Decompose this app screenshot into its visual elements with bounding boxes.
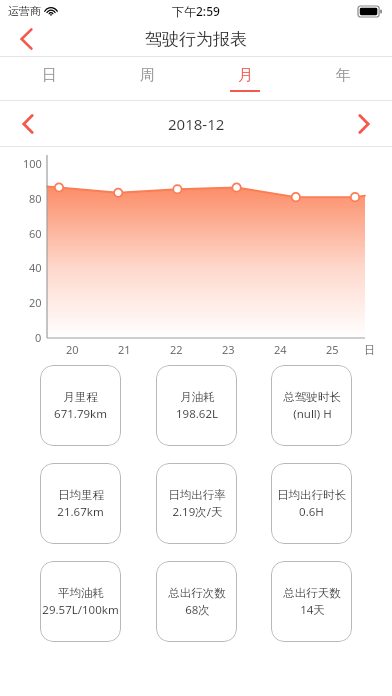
staticText: 20 bbox=[29, 295, 42, 310]
staticText: 68次 bbox=[185, 602, 210, 618]
staticText: 下午2:59 bbox=[172, 3, 220, 19]
staticText: 60 bbox=[29, 226, 42, 241]
staticText: 100 bbox=[23, 156, 42, 171]
button[interactable]: 总出行天数 bbox=[271, 561, 352, 642]
staticText: 14天 bbox=[300, 602, 325, 618]
button[interactable]: 上一月 bbox=[8, 104, 48, 144]
staticText: 月 bbox=[238, 66, 253, 85]
staticText: 671.79km bbox=[54, 406, 107, 422]
button[interactable]: 返回 bbox=[8, 22, 44, 56]
button[interactable]: 月里程 bbox=[40, 365, 121, 446]
staticText: 0.6H bbox=[299, 504, 324, 520]
staticText: 29.57L/100km bbox=[42, 602, 119, 618]
staticText: 25 bbox=[326, 342, 339, 357]
button[interactable]: 日均出行时长 bbox=[271, 463, 352, 544]
staticText: 日 bbox=[42, 66, 57, 85]
staticText: 80 bbox=[29, 191, 42, 206]
staticText: 20 bbox=[66, 342, 79, 357]
button[interactable]: 日均里程 bbox=[40, 463, 121, 544]
staticText: 驾驶行为报表 bbox=[145, 29, 247, 50]
button[interactable]: 日均出行率 bbox=[156, 463, 237, 544]
staticText: 总出行次数 bbox=[168, 586, 226, 600]
staticText: 21.67km bbox=[57, 504, 104, 520]
staticText: (null) H bbox=[293, 406, 332, 422]
staticText: 21 bbox=[118, 342, 131, 357]
staticText: 198.62L bbox=[176, 406, 218, 422]
staticText: 日均出行时长 bbox=[277, 488, 346, 502]
staticText: 日均里程 bbox=[58, 488, 104, 502]
staticText: 总驾驶时长 bbox=[283, 390, 341, 404]
staticText: 运营商 bbox=[8, 4, 41, 18]
button[interactable]: 总驾驶时长 bbox=[271, 365, 352, 446]
staticText: 0 bbox=[35, 330, 42, 345]
staticText: 月里程 bbox=[63, 390, 98, 404]
staticText: 23 bbox=[222, 342, 235, 357]
staticText: 24 bbox=[274, 342, 287, 357]
staticText: 2018-12 bbox=[168, 114, 225, 134]
button[interactable]: 周 bbox=[98, 57, 196, 100]
staticText: 年 bbox=[336, 66, 351, 85]
button[interactable]: 年 bbox=[294, 57, 392, 100]
staticText: 日 bbox=[364, 343, 375, 357]
staticText: 40 bbox=[29, 260, 42, 275]
staticText: 平均油耗 bbox=[58, 586, 104, 600]
button[interactable]: 月油耗 bbox=[156, 365, 237, 446]
button[interactable]: 日 bbox=[0, 57, 98, 100]
button[interactable]: 下一月 bbox=[344, 104, 384, 144]
button[interactable]: 月 bbox=[196, 57, 294, 100]
staticText: 2.19次/天 bbox=[172, 504, 223, 520]
staticText: 22 bbox=[170, 342, 183, 357]
staticText: 日均出行率 bbox=[168, 488, 226, 502]
button[interactable]: 平均油耗 bbox=[40, 561, 121, 642]
staticText: 月油耗 bbox=[180, 390, 215, 404]
staticText: 总出行天数 bbox=[283, 586, 341, 600]
button[interactable]: 总出行次数 bbox=[156, 561, 237, 642]
staticText: 周 bbox=[140, 66, 155, 85]
